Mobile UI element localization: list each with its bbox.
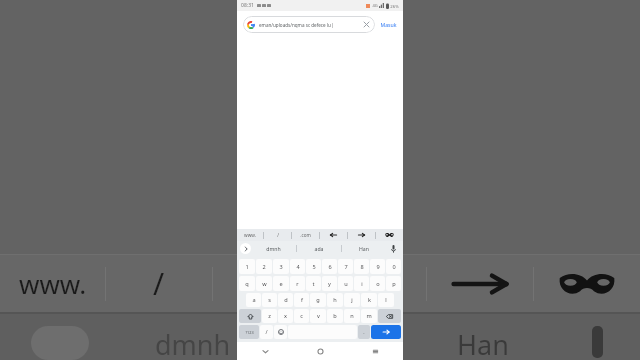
staticText: /: [277, 232, 279, 238]
button[interactable]: ?123: [239, 325, 259, 339]
staticText: a: [252, 296, 256, 304]
button[interactable]: f: [294, 293, 309, 307]
button[interactable]: n: [344, 309, 360, 323]
button[interactable]: More suggestions: [240, 243, 251, 254]
button[interactable]: d: [278, 293, 293, 307]
staticText: 08:31: [241, 2, 254, 9]
staticText: e: [279, 280, 283, 288]
staticText: 4G: [372, 3, 378, 8]
staticText: g: [316, 296, 320, 304]
button[interactable]: 9: [370, 259, 385, 274]
staticText: s: [268, 296, 271, 304]
button[interactable]: x: [278, 309, 293, 323]
staticText: h: [333, 296, 337, 304]
button[interactable]: .: [358, 325, 370, 339]
button[interactable]: Incognito: [376, 229, 403, 241]
button[interactable]: Masuk: [379, 18, 398, 31]
staticText: 8: [360, 263, 364, 271]
button[interactable]: Recents: [348, 342, 403, 360]
button[interactable]: dmnh: [251, 241, 296, 256]
button[interactable]: 5: [306, 259, 321, 274]
button[interactable]: m: [361, 309, 377, 323]
staticText: ada: [314, 245, 324, 252]
button[interactable]: Back: [320, 229, 347, 241]
button[interactable]: 0: [386, 259, 401, 274]
button[interactable]: eman/uploads/nqma sc defece lu|: [243, 16, 375, 33]
button[interactable]: ada: [297, 241, 341, 256]
staticText: x: [284, 312, 287, 320]
staticText: 1: [245, 263, 249, 271]
button[interactable]: o: [370, 276, 385, 291]
button[interactable]: 4: [290, 259, 305, 274]
staticText: m: [366, 312, 372, 320]
staticText: n: [350, 312, 354, 320]
button[interactable]: a: [246, 293, 261, 307]
button[interactable]: 2: [256, 259, 272, 274]
button[interactable]: j: [344, 293, 360, 307]
staticText: /: [265, 328, 268, 336]
button[interactable]: v: [310, 309, 326, 323]
button[interactable]: Emoji: [274, 325, 287, 339]
staticText: q: [245, 280, 249, 288]
button[interactable]: k: [361, 293, 377, 307]
button[interactable]: 7: [338, 259, 353, 274]
button[interactable]: e: [273, 276, 289, 291]
staticText: www.: [244, 232, 256, 238]
staticText: i: [361, 280, 363, 288]
staticText: 5: [312, 263, 316, 271]
button[interactable]: Voice input: [386, 241, 400, 256]
staticText: p: [392, 280, 396, 288]
button[interactable]: y: [322, 276, 337, 291]
button[interactable]: r: [290, 276, 305, 291]
button[interactable]: Shift: [239, 309, 261, 323]
staticText: v: [317, 312, 320, 320]
staticText: w: [262, 280, 267, 288]
button[interactable]: Han: [342, 241, 386, 256]
button[interactable]: Hide keyboard: [237, 342, 293, 360]
button[interactable]: www.: [237, 229, 263, 241]
staticText: Han: [359, 245, 369, 252]
button[interactable]: 8: [354, 259, 369, 274]
button[interactable]: i: [354, 276, 369, 291]
button[interactable]: s: [262, 293, 277, 307]
staticText: dmnh: [266, 245, 281, 252]
staticText: 26%: [390, 3, 399, 9]
staticText: l: [385, 296, 387, 304]
staticText: /: [153, 263, 165, 304]
button[interactable]: l: [378, 293, 394, 307]
staticText: dmnh: [155, 326, 231, 360]
button[interactable]: q: [239, 276, 255, 291]
button[interactable]: c: [294, 309, 309, 323]
staticText: u: [344, 280, 348, 288]
button[interactable]: b: [327, 309, 343, 323]
button[interactable]: 6: [322, 259, 337, 274]
staticText: k: [368, 296, 371, 304]
button[interactable]: Forward: [348, 229, 375, 241]
staticText: eman/uploads/nqma sc defece lu|: [259, 22, 362, 28]
staticText: ?123: [245, 330, 254, 335]
button[interactable]: /: [264, 229, 291, 241]
button[interactable]: t: [306, 276, 321, 291]
button[interactable]: h: [327, 293, 343, 307]
button[interactable]: w: [256, 276, 272, 291]
button[interactable]: Clear: [362, 20, 371, 29]
button[interactable]: Home: [293, 342, 348, 360]
button[interactable]: Enter: [371, 325, 401, 339]
button[interactable]: .com: [292, 229, 319, 241]
staticText: www.: [19, 266, 87, 301]
button[interactable]: z: [262, 309, 277, 323]
staticText: z: [268, 312, 271, 320]
button[interactable]: u: [338, 276, 353, 291]
button[interactable]: 1: [239, 259, 255, 274]
button[interactable]: /: [260, 325, 273, 339]
staticText: 4: [296, 263, 300, 271]
button[interactable]: Backspace: [378, 309, 401, 323]
button[interactable]: g: [310, 293, 326, 307]
staticText: j: [351, 296, 353, 304]
button[interactable]: p: [386, 276, 401, 291]
button[interactable]: 3: [273, 259, 289, 274]
staticText: .com: [300, 232, 311, 238]
staticText: y: [328, 280, 331, 288]
staticText: 9: [376, 263, 380, 271]
